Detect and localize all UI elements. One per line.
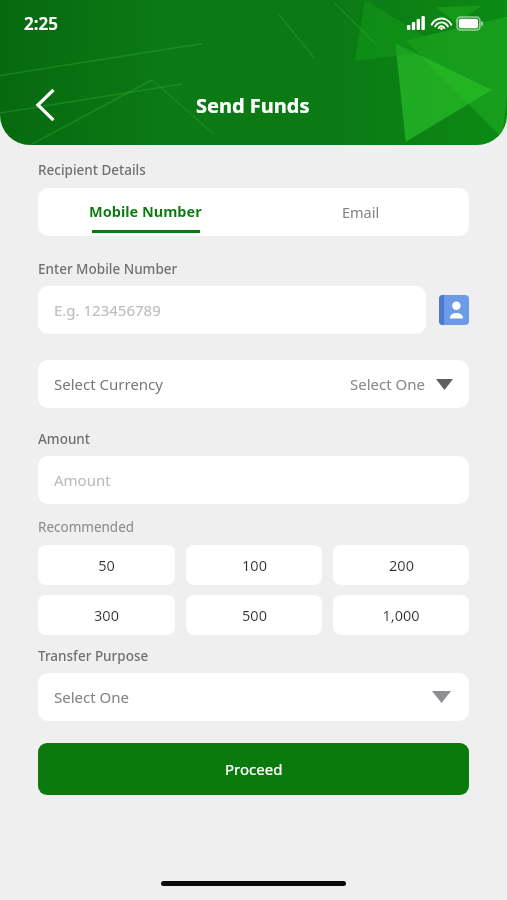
button[interactable]: 1,000 bbox=[333, 595, 469, 635]
staticText: Amount bbox=[54, 470, 111, 490]
staticText: 500 bbox=[242, 605, 267, 625]
staticText: Email bbox=[342, 202, 380, 222]
button[interactable]: Back bbox=[26, 85, 66, 125]
staticText: 2:25 bbox=[24, 12, 58, 35]
staticText: Transfer Purpose bbox=[38, 647, 149, 665]
staticText: Send Funds bbox=[196, 92, 310, 119]
staticText: Proceed bbox=[225, 759, 283, 779]
staticText: Recommended bbox=[38, 518, 135, 536]
button[interactable]: 300 bbox=[38, 595, 175, 635]
button[interactable]: 500 bbox=[186, 595, 322, 635]
button[interactable]: Email bbox=[253, 188, 469, 236]
staticText: 1,000 bbox=[382, 605, 420, 625]
staticText: Select One bbox=[54, 687, 129, 707]
button[interactable]: Mobile Number bbox=[38, 188, 253, 236]
button[interactable]: Proceed bbox=[38, 743, 469, 795]
staticText: E.g. 123456789 bbox=[54, 300, 161, 320]
button[interactable]: Select One bbox=[38, 673, 469, 721]
staticText: 50 bbox=[98, 555, 115, 575]
button[interactable]: Pick contact bbox=[439, 295, 469, 325]
staticText: Select One bbox=[350, 374, 425, 394]
staticText: Recipient Details bbox=[38, 161, 146, 179]
staticText: 300 bbox=[94, 605, 119, 625]
button[interactable]: 50 bbox=[38, 545, 175, 585]
button[interactable]: 200 bbox=[333, 545, 469, 585]
button[interactable]: 100 bbox=[186, 545, 322, 585]
staticText: Amount bbox=[38, 430, 90, 448]
staticText: Enter Mobile Number bbox=[38, 260, 178, 278]
button[interactable]: Select Currency bbox=[38, 360, 469, 408]
staticText: 200 bbox=[389, 555, 414, 575]
staticText: Mobile Number bbox=[89, 201, 202, 221]
button[interactable]: E.g. 123456789 bbox=[38, 286, 426, 334]
staticText: Select Currency bbox=[54, 374, 163, 394]
button[interactable]: Amount bbox=[38, 456, 469, 504]
staticText: 100 bbox=[242, 555, 267, 575]
